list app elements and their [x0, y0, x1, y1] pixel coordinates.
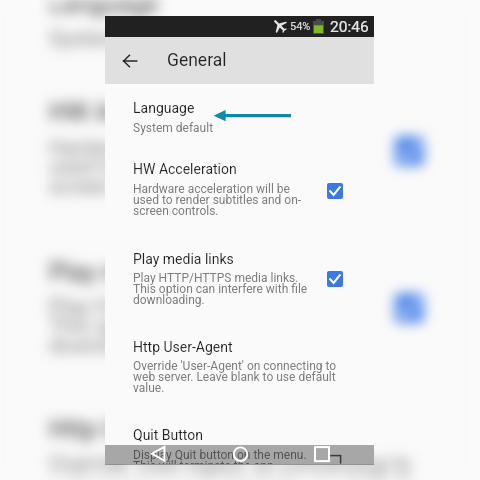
- staticText: screen controls.: [133, 204, 219, 218]
- staticText: web server. Leave blank to use default: [133, 370, 336, 384]
- button[interactable]: HW Acceleration toggle: [327, 183, 343, 199]
- staticText: used to render subtitles and on-: [133, 193, 302, 207]
- staticText: System default: [49, 26, 193, 51]
- button[interactable]: Back: [150, 445, 168, 464]
- staticText: Display Quit button on the menu.: [133, 448, 307, 462]
- staticText: screen controls.: [49, 174, 202, 199]
- staticText: Override 'User-Agent' on connecting to: [49, 451, 413, 476]
- button[interactable]: Quit Button: [105, 419, 374, 464]
- button[interactable]: Language: [105, 96, 374, 151]
- staticText: This option can interfere with file: [49, 313, 361, 338]
- staticText: Play HTTP/HTTPS media links.: [133, 271, 299, 285]
- button[interactable]: Language: [0, 0, 479, 80]
- staticText: Play HTTP/HTTPS media links.: [49, 294, 345, 319]
- button[interactable]: Http User-Agent: [0, 401, 479, 480]
- button[interactable]: HW Acceleration: [105, 151, 374, 241]
- button[interactable]: Play media links toggle: [327, 271, 343, 287]
- button[interactable]: Play media links toggle: [395, 294, 423, 322]
- button[interactable]: Play media links: [105, 241, 374, 331]
- staticText: Hardware acceleration will be: [133, 182, 290, 196]
- staticText: Play media links: [133, 251, 234, 267]
- staticText: Language: [49, 0, 160, 17]
- button[interactable]: Play media links: [0, 240, 479, 401]
- staticText: web server. Leave blank to use default: [49, 470, 411, 480]
- staticText: General: [167, 50, 227, 71]
- staticText: This option can interfere with file: [133, 282, 308, 296]
- staticText: used to render subtitles and on-: [49, 155, 350, 180]
- staticText: This will terminate the app.: [133, 459, 277, 464]
- staticText: Play media links: [49, 258, 229, 287]
- staticText: Quit Button: [133, 427, 203, 443]
- button[interactable]: Back: [106, 37, 153, 84]
- button[interactable]: Home: [231, 445, 250, 464]
- staticText: downloading.: [49, 333, 177, 358]
- staticText: value.: [133, 381, 165, 395]
- staticText: System default: [133, 121, 214, 135]
- staticText: Http User-Agent: [49, 415, 227, 444]
- staticText: Http User-Agent: [133, 339, 233, 355]
- staticText: 20:46: [330, 18, 369, 36]
- staticText: Override 'User-Agent' on connecting to: [133, 359, 337, 373]
- staticText: HW Acceleration: [133, 161, 237, 177]
- button[interactable]: Http User-Agent: [105, 331, 374, 419]
- button[interactable]: HW Acceleration toggle: [395, 137, 423, 165]
- staticText: 54%: [290, 20, 311, 33]
- button[interactable]: HW Acceleration: [0, 80, 479, 240]
- staticText: downloading.: [133, 293, 205, 307]
- staticText: Hardware acceleration will be: [49, 135, 329, 160]
- button[interactable]: Recent apps: [313, 445, 332, 464]
- staticText: HW Acceleration: [49, 98, 234, 126]
- staticText: Language: [133, 100, 195, 116]
